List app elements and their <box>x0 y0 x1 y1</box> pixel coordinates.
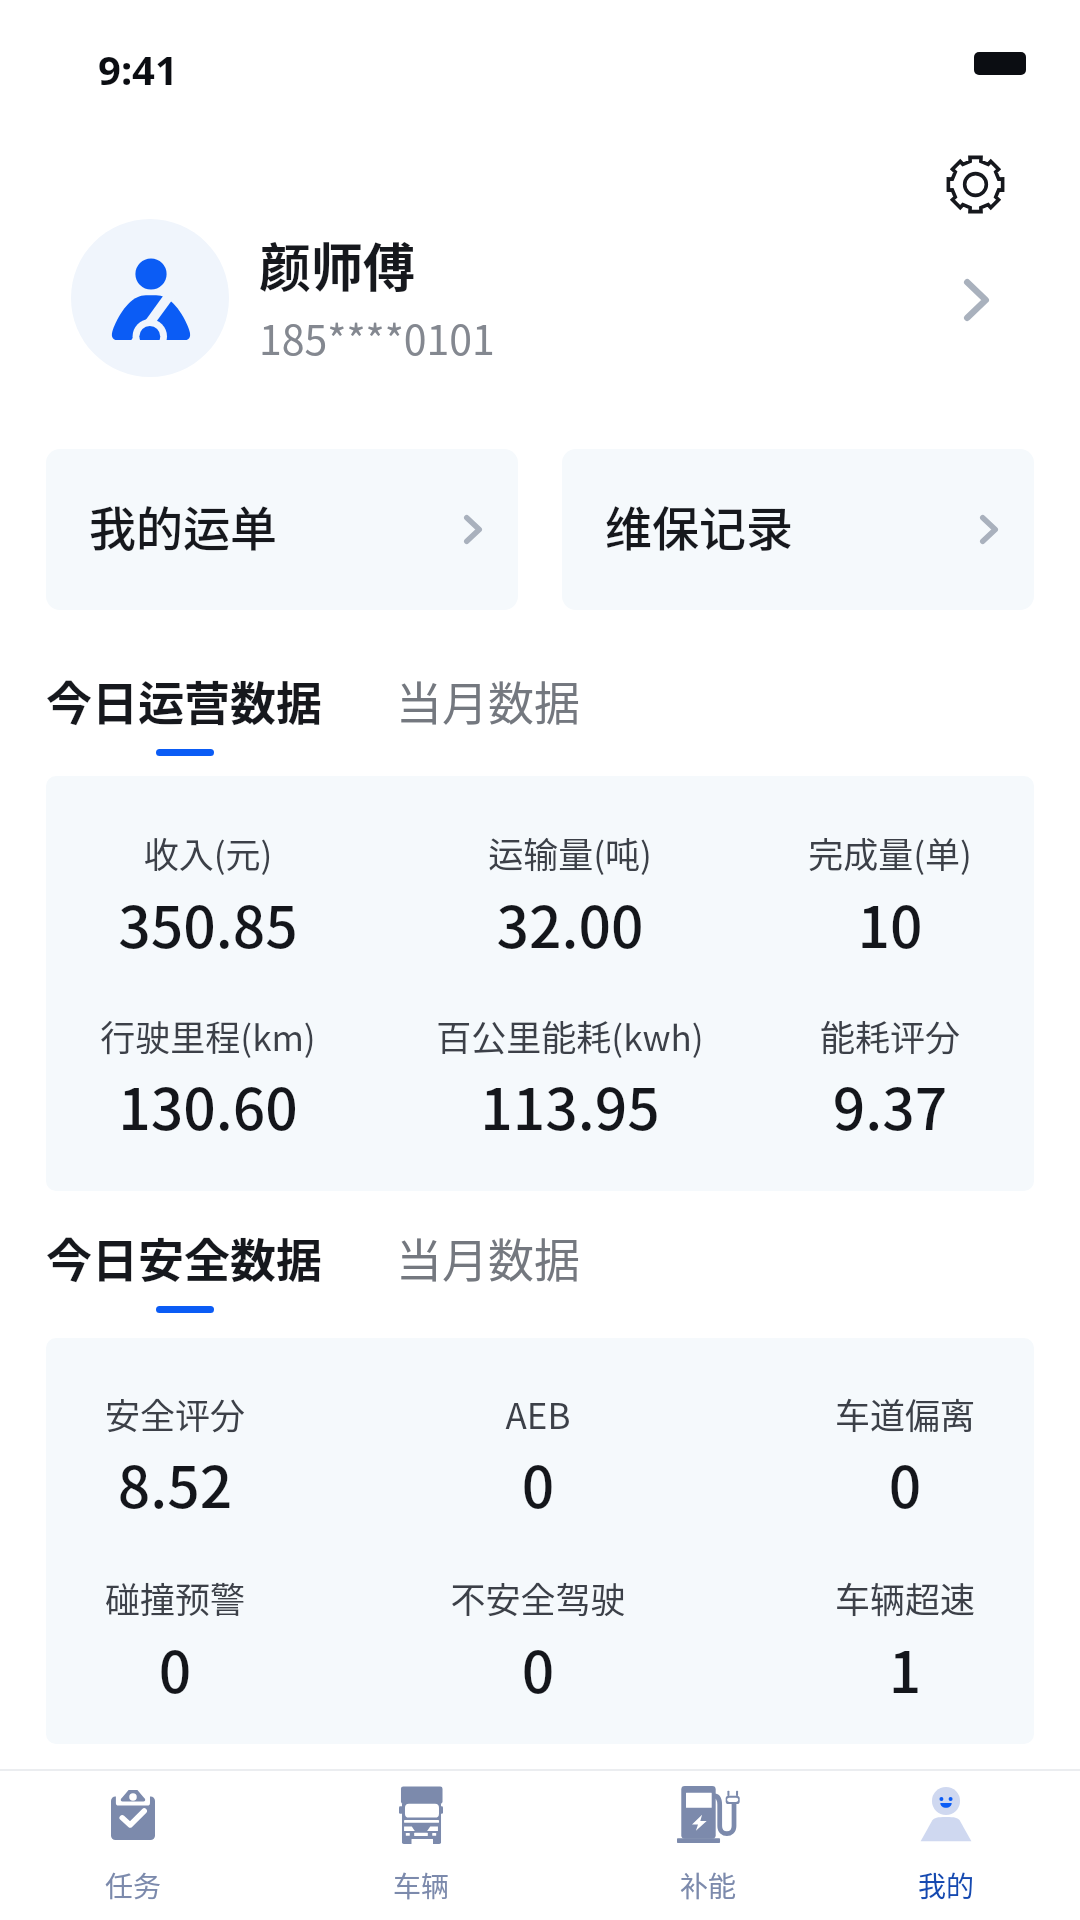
staticText: 185****0101 <box>259 307 495 366</box>
staticText: 我的 <box>918 1865 975 1906</box>
staticText: 我的运单 <box>89 491 277 559</box>
button[interactable]: 我的 <box>846 1769 1046 1920</box>
staticText: 运输量(吨) <box>360 827 780 878</box>
staticText: 今日运营数据 <box>46 667 322 734</box>
button[interactable]: 当月数据 <box>396 1224 580 1291</box>
staticText: 不安全驾驶 <box>328 1572 748 1623</box>
staticText: 130.60 <box>46 1064 418 1147</box>
staticText: 车辆超速 <box>695 1572 1034 1623</box>
staticText: 9:41 <box>98 42 178 96</box>
staticText: 0 <box>46 1627 385 1710</box>
staticText: 113.95 <box>360 1064 780 1147</box>
staticText: 完成量(单) <box>680 827 1034 878</box>
staticText: 0 <box>695 1442 1034 1525</box>
staticText: 任务 <box>105 1865 162 1906</box>
button[interactable]: 维保记录 <box>562 449 1034 610</box>
staticText: AEB <box>328 1388 748 1439</box>
button[interactable]: 补能 <box>608 1769 808 1920</box>
staticText: 维保记录 <box>605 491 793 559</box>
staticText: 350.85 <box>46 882 418 965</box>
staticText: 32.00 <box>360 882 780 965</box>
button[interactable]: 车辆 <box>321 1769 521 1920</box>
staticText: 能耗评分 <box>680 1010 1034 1061</box>
staticText: 当月数据 <box>396 667 580 734</box>
staticText: 行驶里程(km) <box>46 1010 418 1061</box>
button[interactable]: 今日运营数据 <box>46 667 322 734</box>
staticText: 1 <box>695 1627 1034 1710</box>
staticText: 碰撞预警 <box>46 1572 385 1623</box>
staticText: 8.52 <box>46 1442 385 1525</box>
staticText: 车道偏离 <box>695 1388 1034 1439</box>
button[interactable]: 当月数据 <box>396 667 580 734</box>
button[interactable]: 任务 <box>33 1769 233 1920</box>
staticText: 车辆 <box>393 1865 450 1906</box>
staticText: 0 <box>328 1442 748 1525</box>
staticText: 当月数据 <box>396 1224 580 1291</box>
button[interactable]: 我的运单 <box>46 449 518 610</box>
staticText: 9.37 <box>680 1064 1034 1147</box>
staticText: 今日安全数据 <box>46 1224 322 1291</box>
staticText: 颜师傅 <box>259 227 416 302</box>
staticText: 10 <box>680 882 1034 965</box>
staticText: 0 <box>328 1627 748 1710</box>
staticText: 百公里能耗(kwh) <box>360 1010 780 1061</box>
button[interactable]: Settings <box>944 153 1007 216</box>
button[interactable]: 今日安全数据 <box>46 1224 322 1291</box>
staticText: 安全评分 <box>46 1388 385 1439</box>
staticText: 收入(元) <box>46 827 418 878</box>
button[interactable]: 颜师傅 <box>0 214 1080 384</box>
staticText: 补能 <box>680 1865 737 1906</box>
